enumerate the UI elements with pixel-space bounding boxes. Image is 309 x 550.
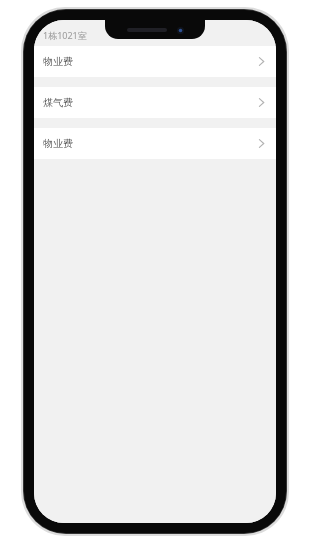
other: Open 煤气费 — [258, 97, 265, 108]
staticText: 物业费 — [43, 55, 73, 68]
staticText: 1栋1021室 — [43, 29, 87, 41]
button[interactable]: 物业费 — [34, 46, 276, 77]
button[interactable]: 物业费 — [34, 128, 276, 159]
other: Open 物业费 — [258, 138, 265, 149]
staticText: 煤气费 — [43, 96, 73, 109]
other: Open 物业费 — [258, 56, 265, 67]
staticText: 物业费 — [43, 137, 73, 150]
button[interactable]: 煤气费 — [34, 87, 276, 118]
